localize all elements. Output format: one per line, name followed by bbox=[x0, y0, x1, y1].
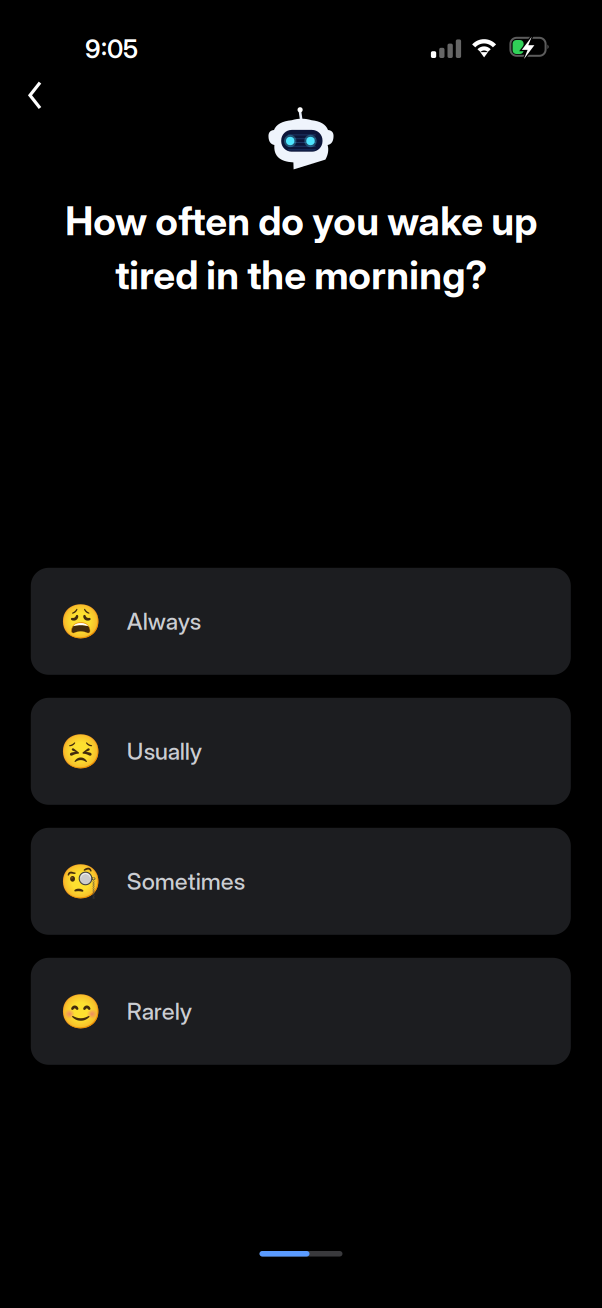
button[interactable]: 😩 bbox=[31, 568, 571, 675]
staticText: 😣 bbox=[60, 732, 102, 771]
staticText: Usually bbox=[127, 737, 202, 765]
staticText: Rarely bbox=[127, 997, 192, 1025]
staticText: 9:05 bbox=[85, 33, 138, 64]
button[interactable]: 🧐 bbox=[31, 828, 571, 935]
staticText: Always bbox=[127, 607, 201, 635]
button[interactable]: 😊 bbox=[31, 958, 571, 1065]
staticText: 😊 bbox=[60, 992, 102, 1031]
button[interactable]: Back bbox=[0, 69, 66, 122]
staticText: How often do you wake up tired in the mo… bbox=[65, 197, 537, 299]
button[interactable]: 😣 bbox=[31, 698, 571, 805]
staticText: Sometimes bbox=[127, 867, 245, 895]
staticText: 🧐 bbox=[60, 862, 102, 901]
staticText: 😩 bbox=[60, 602, 102, 641]
